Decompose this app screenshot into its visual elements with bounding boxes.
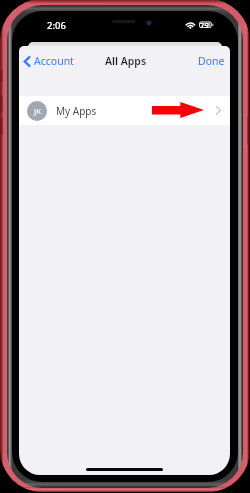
staticText: Account [34,54,74,68]
staticText: JK [34,106,41,116]
button[interactable]: Done [198,54,225,68]
staticText: 75 [200,20,209,30]
staticText: All Apps [105,54,147,68]
other: Open My Apps [216,106,221,115]
staticText: 2:06 [47,19,66,32]
staticText: My Apps [56,104,97,118]
button[interactable]: Account [23,54,74,68]
button[interactable]: JK [19,96,230,125]
